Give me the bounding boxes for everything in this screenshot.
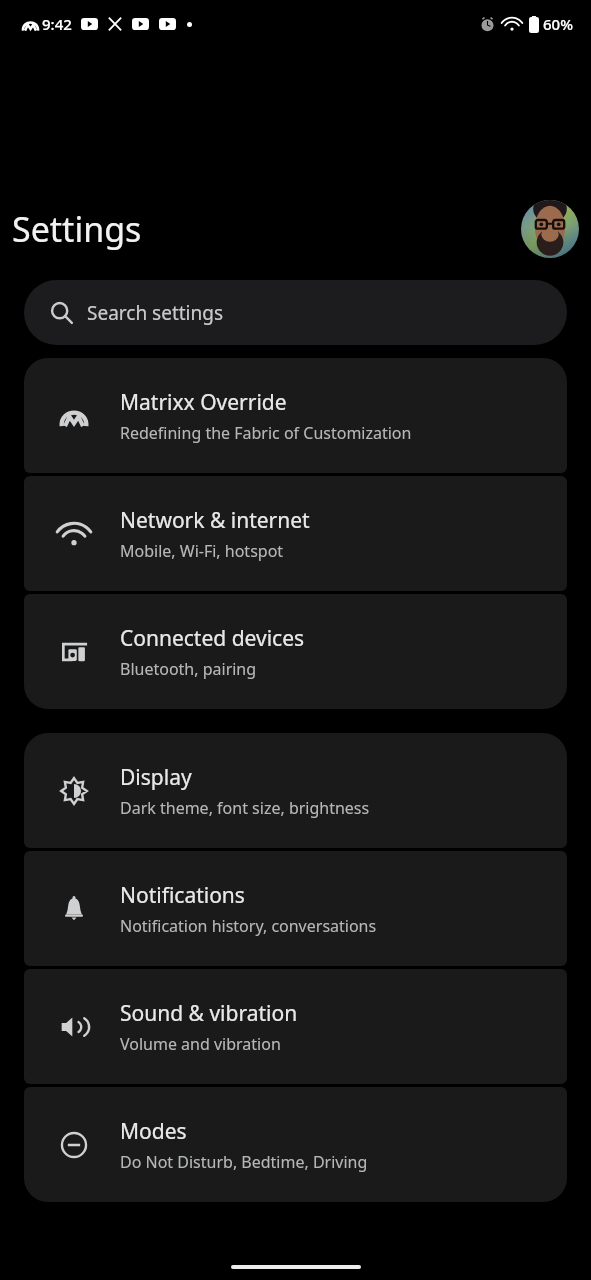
staticText: Network & internet bbox=[120, 506, 310, 535]
staticText: Redefining the Fabric of Customization bbox=[120, 422, 412, 444]
button[interactable]: Network & internet bbox=[24, 476, 567, 591]
staticText: Connected devices bbox=[120, 624, 305, 653]
staticText: Mobile, Wi-Fi, hotspot bbox=[120, 540, 284, 562]
button[interactable]: Account avatar bbox=[521, 200, 579, 258]
button[interactable]: Search settings bbox=[24, 280, 567, 345]
staticText: 60% bbox=[543, 14, 573, 34]
staticText: Search settings bbox=[87, 300, 224, 326]
staticText: Matrixx Override bbox=[120, 388, 287, 417]
staticText: Bluetooth, pairing bbox=[120, 658, 257, 680]
staticText: Settings bbox=[12, 206, 521, 252]
staticText: Display bbox=[120, 763, 192, 792]
staticText: Sound & vibration bbox=[120, 999, 298, 1028]
staticText: Dark theme, font size, brightness bbox=[120, 797, 370, 819]
button[interactable]: Notifications bbox=[24, 851, 567, 966]
staticText: Do Not Disturb, Bedtime, Driving bbox=[120, 1151, 368, 1173]
button[interactable]: Matrixx Override bbox=[24, 358, 567, 473]
staticText: Notification history, conversations bbox=[120, 915, 377, 937]
button[interactable]: Connected devices bbox=[24, 594, 567, 709]
staticText: 9:42 bbox=[42, 14, 72, 34]
staticText: Notifications bbox=[120, 881, 245, 910]
staticText: Modes bbox=[120, 1117, 187, 1146]
button[interactable]: Display bbox=[24, 733, 567, 848]
staticText: Volume and vibration bbox=[120, 1033, 281, 1055]
button[interactable]: Modes bbox=[24, 1087, 567, 1202]
button[interactable]: Sound & vibration bbox=[24, 969, 567, 1084]
